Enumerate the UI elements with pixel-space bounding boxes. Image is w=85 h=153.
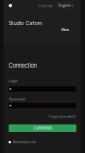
staticText: Forgot password? xyxy=(48,115,76,118)
button[interactable]: Remember me xyxy=(9,140,76,144)
button[interactable]: More xyxy=(61,28,74,32)
staticText: Connexion xyxy=(33,126,51,131)
staticText: ▾ xyxy=(72,4,73,7)
button[interactable]: English xyxy=(57,3,74,8)
staticText: language xyxy=(38,4,53,8)
staticText: Connection xyxy=(9,62,37,69)
button[interactable]: Connexion xyxy=(9,124,76,132)
staticText: ... xyxy=(71,28,74,32)
staticText: Login xyxy=(9,79,18,83)
staticText: Remember me xyxy=(13,140,36,144)
staticText: Studio Cafom xyxy=(9,20,43,26)
staticText: English xyxy=(58,4,70,8)
button[interactable]: Forgot password? xyxy=(48,115,76,118)
staticText: More xyxy=(61,28,69,32)
staticText: Password xyxy=(9,97,25,101)
